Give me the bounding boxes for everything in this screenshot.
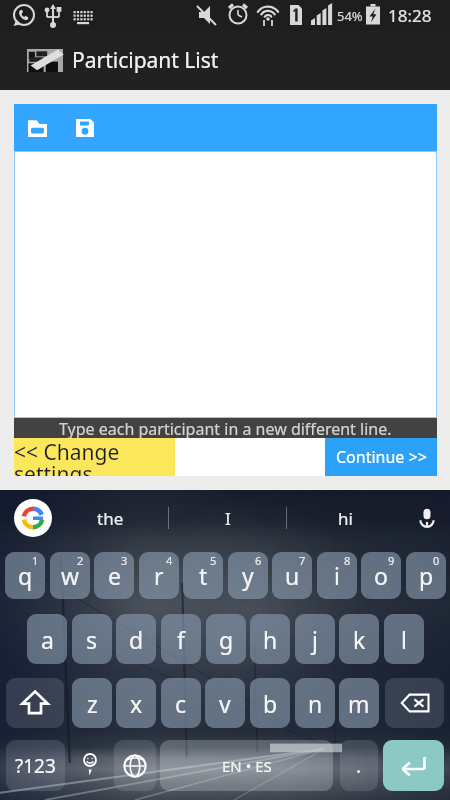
button[interactable]: u [272, 552, 312, 599]
staticText: a [41, 624, 54, 655]
button[interactable]: Google [14, 499, 52, 537]
staticText: 6 [255, 553, 262, 568]
button[interactable]: EN • ES [160, 740, 333, 791]
staticText: l [401, 624, 407, 655]
button[interactable]: App icon [27, 49, 63, 72]
staticText: << Change settings [14, 438, 175, 476]
button[interactable] [14, 151, 437, 418]
button[interactable]: hi [287, 490, 404, 546]
staticText: x [130, 688, 143, 719]
staticText: 2 [77, 553, 84, 568]
staticText: 4 [166, 553, 173, 568]
button[interactable]: ?123 [6, 740, 65, 791]
staticText: 0 [433, 553, 440, 568]
staticText: g [219, 624, 234, 655]
staticText: ?123 [15, 753, 56, 779]
staticText: Continue >> [336, 446, 427, 468]
staticText: the [97, 507, 124, 530]
staticText: . [356, 753, 362, 779]
button[interactable]: Backspace [385, 678, 444, 728]
staticText: p [419, 560, 434, 591]
button[interactable]: n [295, 678, 335, 728]
staticText: e [108, 560, 121, 591]
button[interactable]: v [205, 678, 245, 728]
button[interactable]: Emoji [69, 740, 111, 791]
staticText: 3 [121, 553, 128, 568]
staticText: o [374, 560, 388, 591]
staticText: i [334, 560, 340, 591]
staticText: EN • ES [222, 756, 272, 776]
staticText: b [263, 688, 278, 719]
button[interactable]: g [206, 614, 246, 664]
staticText: d [129, 624, 144, 655]
button[interactable]: f [161, 614, 201, 664]
button[interactable]: p [406, 552, 446, 599]
staticText: m [348, 688, 370, 719]
button[interactable]: Voice input [404, 495, 450, 541]
button[interactable]: Shift [6, 678, 64, 728]
button[interactable]: Enter [383, 740, 444, 791]
staticText: u [285, 560, 300, 591]
button[interactable]: b [250, 678, 290, 728]
staticText: r [154, 560, 164, 591]
staticText: 1 [32, 553, 39, 568]
button[interactable]: d [116, 614, 156, 664]
staticText: I [225, 507, 231, 530]
staticText: c [175, 688, 187, 719]
button[interactable]: r [139, 552, 179, 599]
staticText: 7 [299, 553, 306, 568]
button[interactable]: Save [66, 106, 103, 150]
button[interactable]: << Change settings [14, 438, 175, 476]
button[interactable]: w [50, 552, 90, 599]
button[interactable]: I [169, 490, 286, 546]
button[interactable]: q [5, 552, 45, 599]
staticText: 18:28 [388, 4, 432, 27]
staticText: 54% [337, 7, 363, 25]
button[interactable]: the [52, 490, 168, 546]
button[interactable]: c [161, 678, 201, 728]
button[interactable]: Continue >> [325, 438, 437, 476]
staticText: q [18, 560, 33, 591]
staticText: 8 [344, 553, 351, 568]
staticText: t [199, 560, 208, 591]
button[interactable]: h [250, 614, 290, 664]
staticText: 5 [210, 553, 217, 568]
button[interactable]: l [384, 614, 424, 664]
button[interactable]: a [27, 614, 67, 664]
button[interactable]: s [72, 614, 112, 664]
staticText: 9 [388, 553, 395, 568]
button[interactable]: y [228, 552, 268, 599]
button[interactable]: Open file [19, 106, 56, 150]
staticText: z [87, 688, 98, 719]
button[interactable]: . [340, 740, 378, 791]
staticText: s [86, 624, 98, 655]
staticText: n [308, 688, 323, 719]
button[interactable]: x [116, 678, 156, 728]
staticText: h [263, 624, 278, 655]
button[interactable]: t [183, 552, 223, 599]
staticText: f [177, 624, 185, 655]
button[interactable]: e [94, 552, 134, 599]
button[interactable]: j [295, 614, 335, 664]
staticText: Type each participant in a new different… [59, 418, 392, 438]
staticText: Participant List [72, 46, 219, 75]
button[interactable]: i [317, 552, 357, 599]
button[interactable]: k [339, 614, 379, 664]
button[interactable]: o [361, 552, 401, 599]
staticText: k [353, 624, 366, 655]
button[interactable]: Language [114, 740, 156, 791]
staticText: hi [338, 507, 353, 530]
button[interactable]: m [339, 678, 379, 728]
staticText: y [242, 560, 254, 591]
staticText: j [312, 624, 318, 655]
button[interactable]: z [72, 678, 112, 728]
staticText: w [61, 560, 80, 591]
staticText: v [219, 688, 231, 719]
